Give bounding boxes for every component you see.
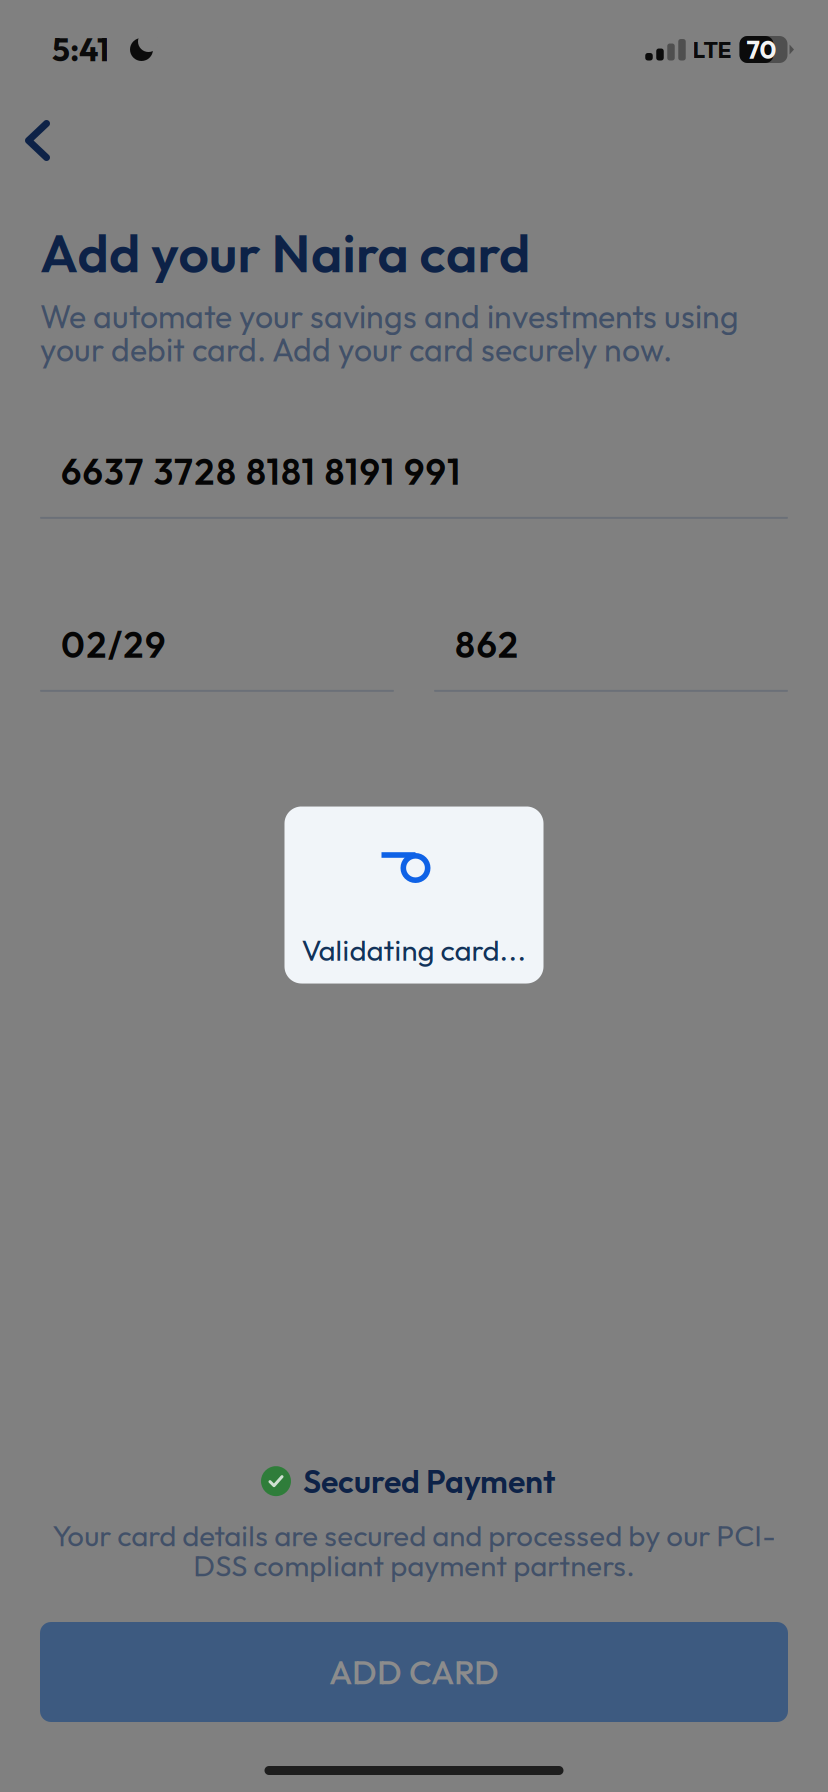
staticText: 70 [746,33,776,65]
staticText: 5:41 [52,29,109,70]
staticText: Add your Naira card [40,219,530,286]
staticText: Secured Payment [303,1461,555,1501]
staticText: ADD CARD [329,1651,499,1693]
button[interactable]: Back [0,99,85,184]
staticText: We automate your savings and investments… [40,296,739,370]
staticText: 02/29 [61,622,165,667]
staticText: Validating card... [301,931,526,968]
button[interactable]: ADD CARD [40,1622,788,1722]
staticText: Your card details are secured and proces… [52,1517,776,1584]
staticText: 6637 3728 8181 8191 991 [61,449,460,494]
staticText: 862 [455,622,518,667]
staticText: LTE [692,35,731,64]
